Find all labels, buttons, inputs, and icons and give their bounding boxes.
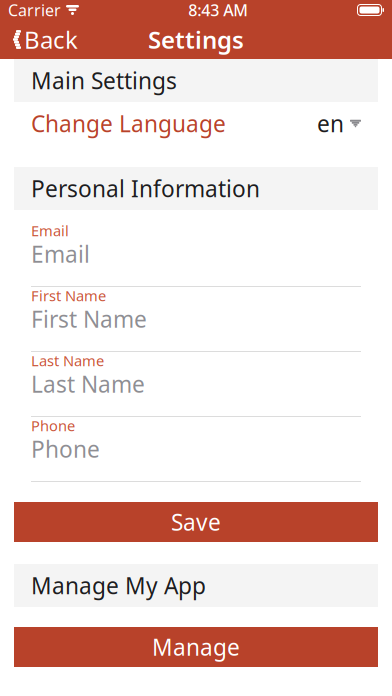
staticText: Phone xyxy=(31,434,100,464)
staticText: Email xyxy=(31,221,69,240)
staticText: First Name xyxy=(31,304,147,334)
staticText: First Name xyxy=(31,286,106,305)
staticText: 8:43 AM xyxy=(188,0,248,21)
staticText: Back xyxy=(24,24,78,55)
staticText: Last Name xyxy=(31,351,104,370)
button[interactable]: Change Language xyxy=(0,102,392,145)
staticText: Main Settings xyxy=(31,65,177,95)
button[interactable]: Save xyxy=(0,502,392,542)
staticText: Email xyxy=(31,239,90,269)
staticText: Settings xyxy=(148,24,244,55)
button[interactable]: Manage xyxy=(0,627,392,667)
button[interactable]: Back xyxy=(0,20,87,59)
staticText: Change Language xyxy=(31,108,226,138)
staticText: Manage My App xyxy=(31,570,206,600)
staticText: Carrier xyxy=(8,0,61,21)
staticText: Personal Information xyxy=(31,173,260,203)
staticText: en xyxy=(317,108,344,138)
staticText: Phone xyxy=(31,416,75,435)
staticText: Last Name xyxy=(31,369,145,399)
staticText: Save xyxy=(171,507,221,537)
staticText: Manage xyxy=(152,632,240,662)
